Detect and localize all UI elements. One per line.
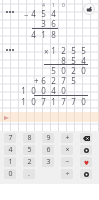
button[interactable]: Rate this app — [83, 3, 95, 15]
staticText: 4 — [31, 8, 36, 19]
staticText: 0 — [8, 169, 13, 179]
staticText: 0 — [61, 65, 66, 76]
staticText: 5 — [27, 145, 32, 155]
staticText: 4 — [8, 145, 13, 155]
staticText: 5 — [41, 8, 46, 19]
button[interactable]: 1 — [4, 157, 16, 167]
staticText: 7 — [41, 96, 46, 107]
staticText: 2 — [27, 157, 32, 167]
staticText: 5 — [71, 45, 76, 56]
staticText: + — [65, 133, 70, 143]
button[interactable]: Equals — [80, 169, 92, 179]
staticText: 1 — [52, 2, 55, 9]
staticText: ÷ — [65, 169, 70, 179]
staticText: 0 — [31, 85, 36, 96]
staticText: 1 — [21, 96, 26, 107]
staticText: 3 — [41, 18, 46, 29]
button[interactable]: 0 — [4, 169, 16, 179]
staticText: 8 — [51, 29, 56, 40]
button[interactable]: 6 — [42, 145, 54, 155]
staticText: 7 — [61, 75, 66, 86]
staticText: 5 — [51, 65, 56, 76]
staticText: 9 — [46, 133, 51, 143]
staticText: 0 — [31, 96, 36, 107]
staticText: 0 — [62, 2, 65, 9]
staticText: . — [28, 169, 30, 179]
button[interactable]: . — [23, 169, 35, 179]
staticText: 0 — [81, 65, 86, 76]
staticText: 1 — [51, 96, 56, 107]
staticText: × — [65, 145, 70, 155]
staticText: 4 — [51, 85, 56, 96]
staticText: − — [65, 157, 70, 167]
staticText: 1 — [41, 29, 46, 40]
staticText: 0 — [41, 85, 46, 96]
staticText: + — [34, 75, 39, 86]
staticText: 7 — [8, 133, 13, 143]
staticText: 8 — [61, 55, 66, 66]
staticText: × — [44, 46, 49, 57]
staticText: 8 — [27, 133, 32, 143]
button[interactable]: Favourite — [80, 157, 92, 167]
other: Equals — [84, 172, 89, 177]
other: Backspace — [83, 136, 90, 141]
button[interactable]: 2 — [23, 157, 35, 167]
staticText: 7 — [61, 96, 66, 107]
button[interactable]: + — [61, 133, 73, 143]
staticText: 3 — [46, 157, 51, 167]
other: Favourite — [84, 160, 89, 165]
staticText: 6 — [51, 18, 56, 29]
button[interactable]: − — [61, 157, 73, 167]
button[interactable]: × — [61, 145, 73, 155]
staticText: 1 — [51, 45, 56, 56]
staticText: 6 — [46, 145, 51, 155]
button[interactable]: 4 — [4, 145, 16, 155]
staticText: 2 — [51, 75, 56, 86]
staticText: − — [24, 9, 29, 20]
staticText: 1 — [21, 85, 26, 96]
button[interactable]: Settings — [80, 145, 92, 155]
staticText: 5 — [71, 75, 76, 86]
button[interactable]: 5 — [23, 145, 35, 155]
staticText: 2 — [61, 45, 66, 56]
button[interactable]: ÷ — [61, 169, 73, 179]
staticText: 1 — [8, 157, 13, 167]
staticText: 7 — [71, 96, 76, 107]
staticText: 4 — [31, 29, 36, 40]
staticText: 4 — [81, 55, 86, 66]
button[interactable]: 3 — [42, 157, 54, 167]
staticText: 0 — [61, 85, 66, 96]
other: Settings — [84, 148, 89, 153]
staticText: 4 — [51, 8, 56, 19]
button[interactable]: 9 — [42, 133, 54, 143]
staticText: 6 — [41, 75, 46, 86]
staticText: 5 — [71, 55, 76, 66]
staticText: 4 — [42, 2, 45, 9]
button[interactable]: 8 — [23, 133, 35, 143]
button[interactable]: 7 — [4, 133, 16, 143]
button[interactable]: Backspace — [80, 133, 92, 143]
staticText: 2 — [71, 65, 76, 76]
staticText: 0 — [81, 96, 86, 107]
button[interactable] — [0, 112, 99, 122]
staticText: 5 — [81, 45, 86, 56]
